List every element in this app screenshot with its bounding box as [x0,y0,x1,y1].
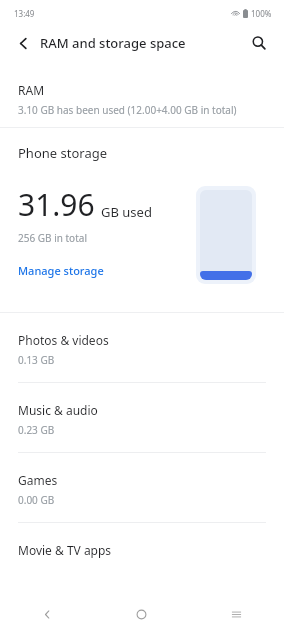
button[interactable]: Photos & videos [0,313,284,383]
staticText: 3.10 GB has been used (12.00+4.00 GB in … [18,103,237,117]
button[interactable]: Manage storage [18,263,104,278]
staticText: Manage storage [18,263,104,278]
staticText: 100% [251,8,272,19]
staticText: RAM [18,82,45,98]
staticText: RAM and storage space [40,34,186,52]
button[interactable]: Search [244,28,274,58]
staticText: Photos & videos [18,332,109,348]
button[interactable]: Back [8,28,38,58]
button[interactable]: Recents [189,599,284,630]
staticText: Movie & TV apps [18,542,112,558]
button[interactable]: Music & audio [0,383,284,453]
staticText: 13:49 [14,8,35,19]
button[interactable]: Games [0,453,284,523]
staticText: 31.96 [18,184,95,225]
staticText: GB used [101,203,152,221]
staticText: 0.23 GB [18,423,55,437]
button[interactable]: Back [0,599,94,630]
button[interactable]: RAM [0,80,284,123]
staticText: Music & audio [18,402,98,418]
staticText: Games [18,472,58,488]
staticText: 0.00 GB [18,493,55,507]
staticText: Phone storage [18,144,108,162]
staticText: 0.13 GB [18,353,55,367]
button[interactable]: Home [94,599,189,630]
button[interactable]: Movie & TV apps [0,523,284,558]
staticText: 256 GB in total [18,231,87,245]
